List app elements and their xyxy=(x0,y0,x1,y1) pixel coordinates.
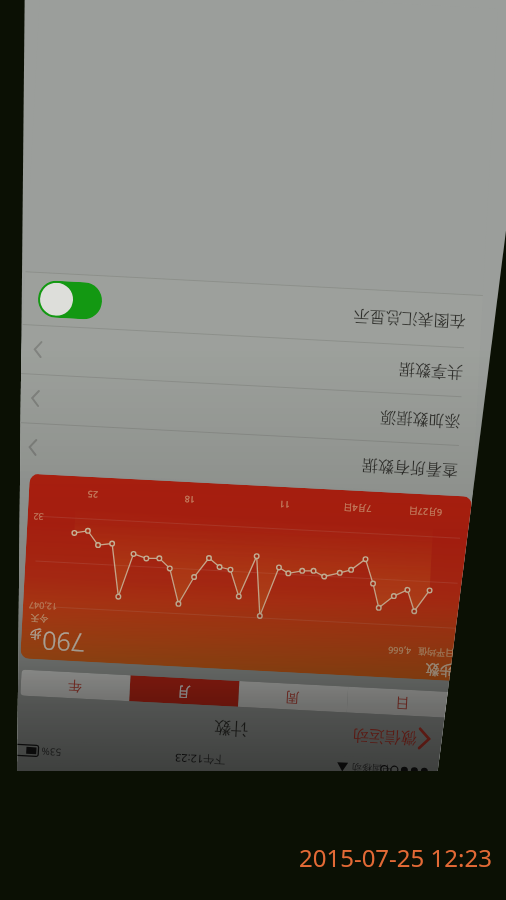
staticText: 12,047 xyxy=(28,600,57,613)
staticText: 计数 xyxy=(213,717,248,739)
button[interactable]: 年 xyxy=(20,669,130,701)
button[interactable]: 共享数据 xyxy=(20,325,480,397)
staticText: 7月4日 xyxy=(333,502,382,516)
staticText: 步 xyxy=(29,627,42,642)
staticText: 日 xyxy=(395,693,410,712)
staticText: 在图表汇总显示 xyxy=(353,305,466,331)
staticText: 53% xyxy=(41,745,62,760)
staticText: 步数 xyxy=(425,660,454,679)
staticText: 微信运动 xyxy=(352,725,417,748)
staticText: 共享数据 xyxy=(398,359,463,382)
staticText: 下午12:23 xyxy=(174,751,225,768)
staticText: 32 xyxy=(32,511,44,523)
staticText: 月 xyxy=(176,682,191,700)
button[interactable]: 返回 微信运动 xyxy=(348,717,436,757)
staticText: 周 xyxy=(285,687,300,706)
staticText: 今天 xyxy=(30,613,49,625)
staticText: 年 xyxy=(67,676,82,695)
staticText: 查看所有数据 xyxy=(361,455,458,480)
button[interactable]: 月 xyxy=(129,675,239,707)
button[interactable]: 添加数据源 xyxy=(18,374,477,446)
staticText: 11 xyxy=(260,498,309,512)
button[interactable]: 日 xyxy=(347,687,458,718)
staticText: 日平均值 4,666 xyxy=(387,645,454,660)
staticText: 25 xyxy=(69,488,117,502)
staticText: 18 xyxy=(165,493,214,507)
staticText: 790 xyxy=(41,624,86,661)
staticText: 中国移动 xyxy=(352,761,392,771)
button[interactable]: 查看所有数据 xyxy=(15,423,475,495)
staticText: 添加数据源 xyxy=(380,407,461,431)
staticText: 6月27日 xyxy=(401,505,450,520)
staticText: 2015-07-25 12:23 xyxy=(299,841,492,874)
button[interactable]: 周 xyxy=(238,681,348,713)
button[interactable]: 在图表汇总显示 xyxy=(23,272,483,348)
